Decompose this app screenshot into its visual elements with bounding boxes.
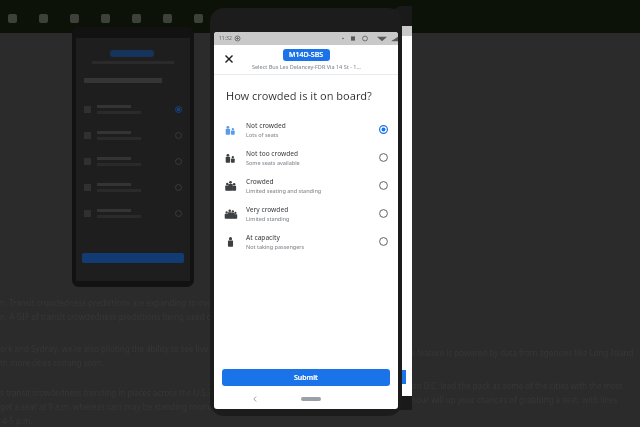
button[interactable]: Submit	[222, 369, 390, 386]
button[interactable]: Home	[301, 397, 321, 401]
staticText: get a seat at 9 a.m. whereas cars may be…	[0, 401, 224, 412]
staticText: Not taking passengers	[246, 243, 305, 250]
staticText: M14D-SBS	[289, 50, 324, 60]
staticText: Lots of seats	[246, 131, 279, 138]
staticText: Select Bus Les Delancey-FDR Via 14 St - …	[252, 63, 361, 70]
staticText: his feature is powered by data from agen…	[404, 347, 640, 358]
staticText: Not crowded	[246, 121, 286, 130]
staticText: h hour will up your chances of grabbing …	[404, 394, 640, 405]
button[interactable]: Not crowded	[214, 115, 398, 143]
button[interactable]: At capacity	[214, 227, 398, 255]
staticText: How crowded is it on board?	[226, 88, 372, 103]
staticText: Limited seating and standing	[246, 187, 322, 194]
staticText: n. A GIF of transit crowdedness predicti…	[0, 311, 229, 322]
staticText: gton D.C. lead the pack as some of the c…	[404, 380, 640, 391]
button[interactable]: Back	[250, 394, 260, 404]
staticText: 11:32	[219, 35, 232, 42]
staticText: Submit	[294, 373, 318, 383]
staticText: s transit crowdedness trending in places…	[0, 387, 220, 398]
staticText: Not too crowded	[246, 149, 299, 158]
button[interactable]: Close	[222, 52, 236, 66]
staticText: n. Transit crowdedness predictions are e…	[0, 297, 228, 308]
button[interactable]: Not too crowded	[214, 143, 398, 171]
staticText: Limited standing	[246, 215, 290, 222]
button[interactable]: Crowded	[214, 171, 398, 199]
staticText: ork and Sydney, we're also piloting the …	[0, 343, 223, 354]
button[interactable]: Very crowded	[214, 199, 398, 227]
staticText: At capacity	[246, 233, 280, 242]
staticText: Crowded	[246, 177, 274, 186]
staticText: Very crowded	[246, 205, 289, 214]
staticText: Some seats available	[246, 159, 300, 166]
